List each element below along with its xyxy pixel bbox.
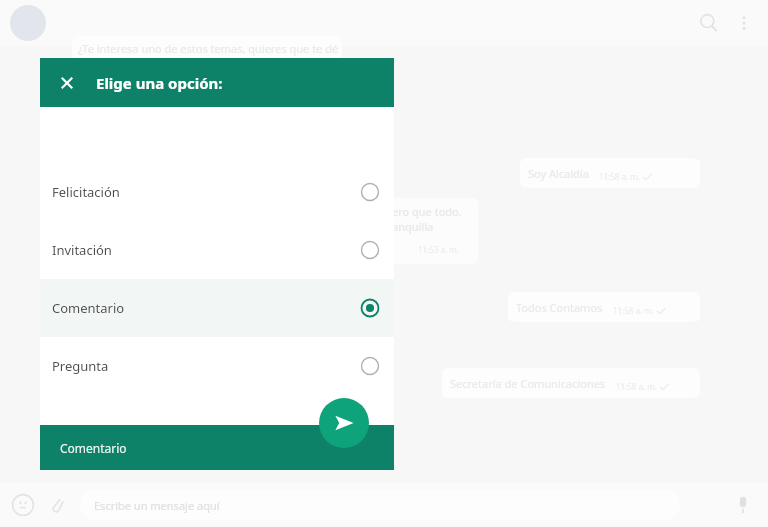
button[interactable]: Felicitación <box>40 163 394 221</box>
staticText: Soy Alcaldía <box>528 166 589 181</box>
staticText: 11:53 a. m. <box>418 244 459 255</box>
button[interactable]: Send <box>319 398 369 448</box>
button[interactable]: Emoji <box>10 492 36 518</box>
staticText: Escribe un mensaje aquí <box>94 498 220 513</box>
button[interactable]: Voice message <box>730 492 756 518</box>
staticText: Secretaría de Comunicaciones <box>450 376 606 391</box>
staticText: Pregunta <box>52 357 360 375</box>
staticText: 11:58 a. m. <box>613 305 654 316</box>
button[interactable]: Comentario <box>40 279 394 337</box>
staticText: Todos Contamos <box>516 300 603 315</box>
staticText: Comentario <box>52 299 360 317</box>
button[interactable]: Attach <box>44 492 70 518</box>
button[interactable]: Escribe un mensaje aquí <box>80 490 680 520</box>
staticText: Elige una opción: <box>96 73 223 93</box>
button[interactable]: Close <box>56 72 78 94</box>
button[interactable]: Invitación <box>40 221 394 279</box>
staticText: ¿Te interesa uno de estos temas, quieres… <box>78 41 339 56</box>
button[interactable]: Search <box>697 11 721 35</box>
button[interactable]: More options <box>732 11 756 35</box>
staticText: ero que todo. <box>392 204 462 219</box>
staticText: Comentario <box>60 440 127 456</box>
staticText: 11:58 a. m. <box>616 381 657 392</box>
button[interactable]: Pregunta <box>40 337 394 395</box>
staticText: Invitación <box>52 241 360 259</box>
staticText: anquilla <box>392 219 434 234</box>
staticText: Felicitación <box>52 183 360 201</box>
staticText: 11:58 a. m. <box>599 171 640 182</box>
